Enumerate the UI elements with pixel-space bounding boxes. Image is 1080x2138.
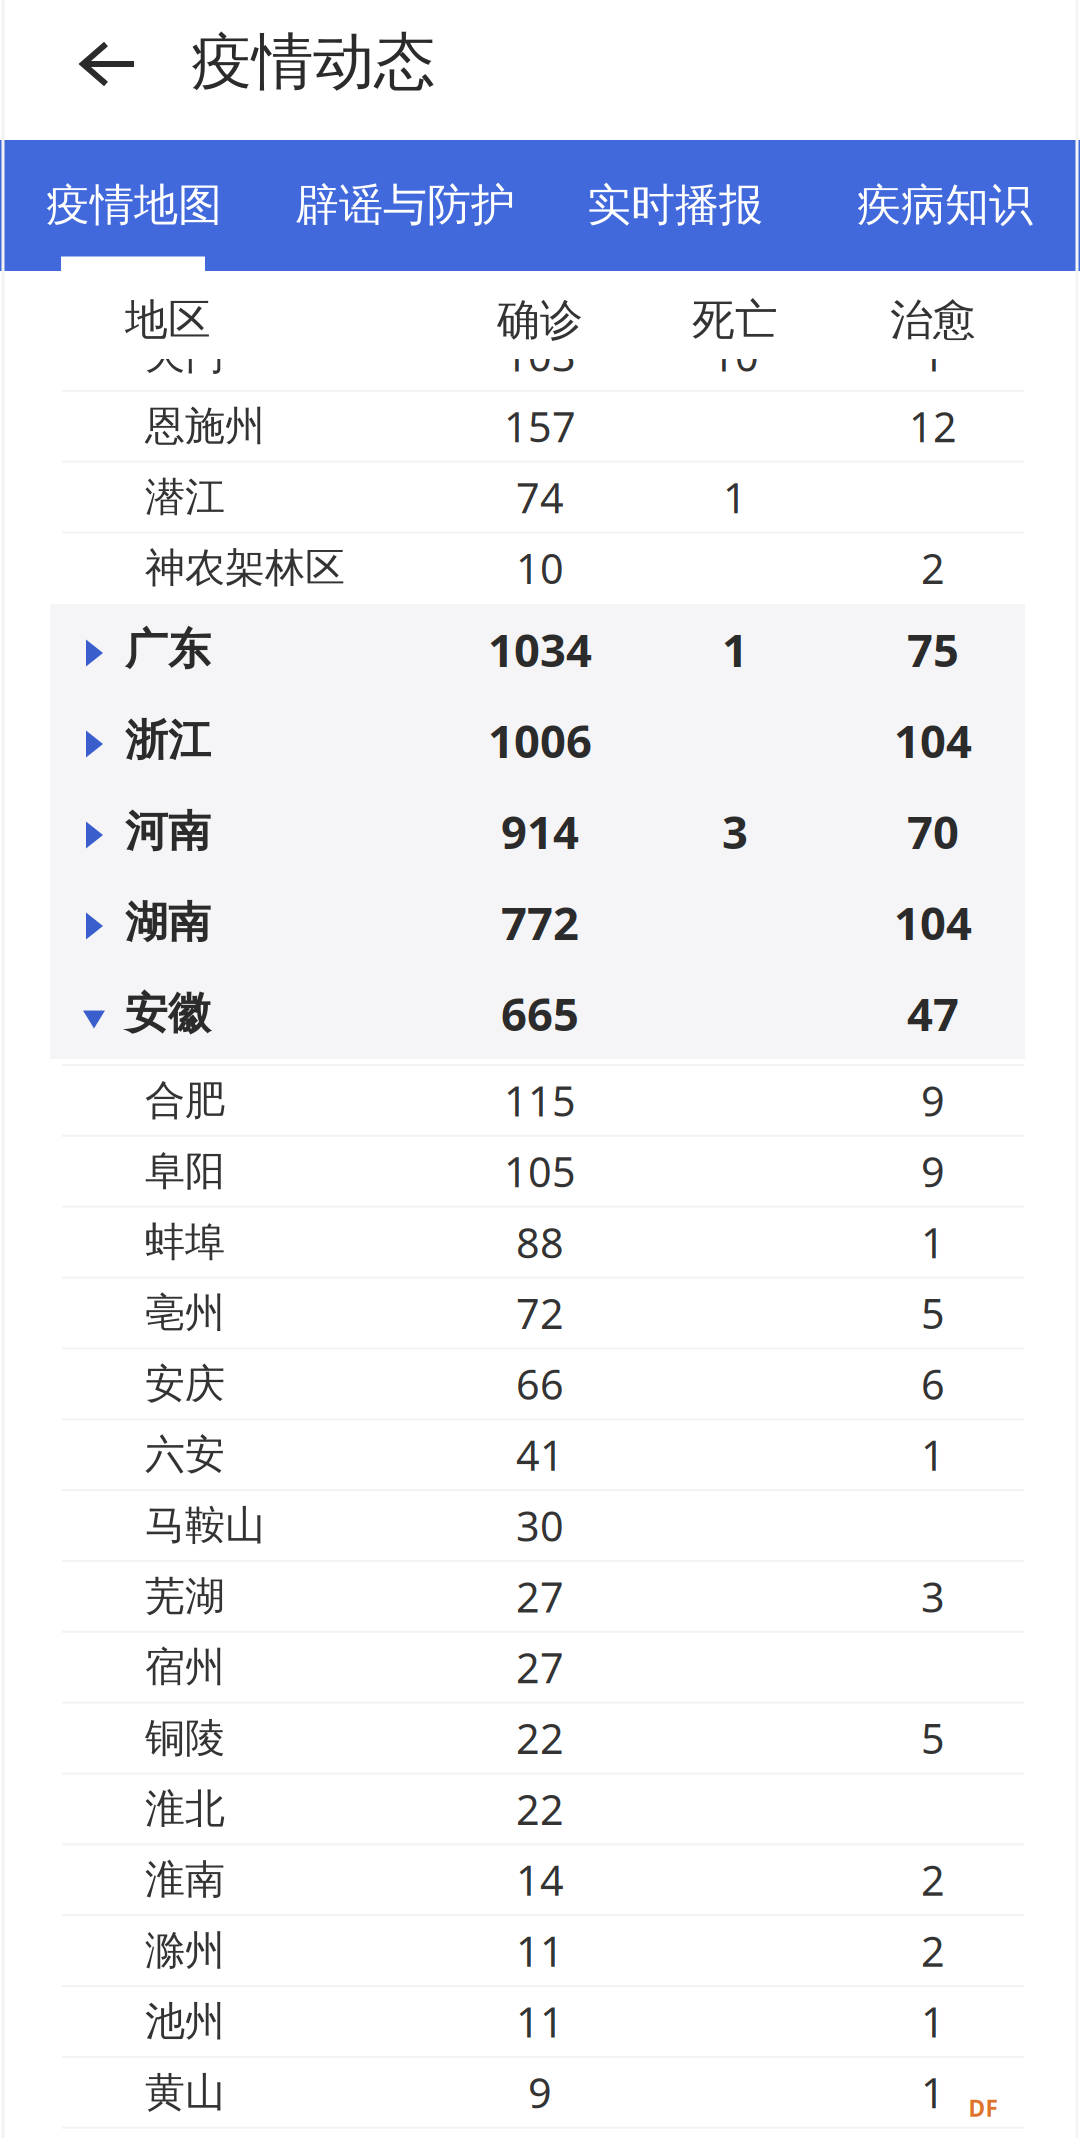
button[interactable]: 广东 <box>0 604 1080 695</box>
staticText: 70 <box>907 801 959 862</box>
staticText: 滁州 <box>145 1926 225 1975</box>
button[interactable]: 安庆 <box>62 1348 1024 1419</box>
staticText: 恩施州 <box>145 402 265 451</box>
staticText: 马鞍山 <box>145 1501 265 1550</box>
button[interactable]: 淮北 <box>62 1773 1024 1844</box>
button[interactable]: Back <box>48 4 168 124</box>
button[interactable]: 芜湖 <box>62 1561 1024 1632</box>
staticText: 5 <box>921 1711 945 1765</box>
button[interactable]: 马鞍山 <box>62 1490 1024 1561</box>
staticText: 22 <box>516 1781 564 1836</box>
staticText: 铜陵 <box>145 1713 225 1763</box>
button[interactable]: 阜阳 <box>62 1136 1024 1207</box>
staticText: 72 <box>516 1285 564 1340</box>
button[interactable]: 湖南 <box>0 877 1080 968</box>
button[interactable]: 蚌埠 <box>62 1207 1024 1277</box>
button[interactable]: 疫情地图 <box>10 139 258 270</box>
button[interactable]: 浙江 <box>0 695 1080 786</box>
button[interactable]: 宿州 <box>62 1632 1024 1703</box>
staticText: 潜江 <box>145 473 225 522</box>
button[interactable]: 辟谣与防护 <box>255 139 555 270</box>
staticText: 淮南 <box>145 1855 225 1904</box>
staticText: 疫情动态 <box>191 24 435 100</box>
staticText: 11 <box>516 1994 564 2049</box>
staticText: 六安 <box>145 1430 225 1479</box>
staticText: 3 <box>722 801 748 862</box>
staticText: 阜阳 <box>145 1147 225 1196</box>
staticText: 914 <box>501 801 579 862</box>
staticText: 黄山 <box>145 2068 225 2117</box>
staticText: 死亡 <box>692 294 778 346</box>
staticText: 115 <box>504 1073 576 1128</box>
staticText: 淮北 <box>145 1784 225 1833</box>
button[interactable]: 铜陵 <box>62 1703 1024 1773</box>
staticText: 2 <box>921 1852 945 1907</box>
staticText: 3 <box>921 1569 945 1624</box>
staticText: 10 <box>711 328 759 383</box>
staticText: 47 <box>907 983 959 1044</box>
button[interactable]: 滁州 <box>62 1915 1024 1986</box>
button[interactable]: 疾病知识 <box>821 139 1069 270</box>
staticText: 1 <box>921 1215 945 1270</box>
staticText: 辟谣与防护 <box>295 178 515 232</box>
staticText: 1 <box>722 619 748 680</box>
staticText: 9 <box>921 1073 945 1128</box>
button[interactable]: 合肥 <box>62 1065 1024 1136</box>
staticText: 1 <box>921 2065 945 2120</box>
staticText: 9 <box>921 1144 945 1199</box>
staticText: 河南 <box>125 805 211 858</box>
staticText: 104 <box>894 892 972 953</box>
button[interactable]: 淮南 <box>62 1844 1024 1915</box>
staticText: 亳州 <box>145 1288 225 1337</box>
staticText: 合肥 <box>145 1076 225 1125</box>
staticText: 5 <box>921 1285 945 1340</box>
staticText: 772 <box>501 892 579 953</box>
staticText: 实时播报 <box>587 178 763 232</box>
staticText: 27 <box>516 1569 564 1624</box>
staticText: 12 <box>909 399 957 454</box>
staticText: 安庆 <box>145 1359 225 1408</box>
staticText: 88 <box>516 1215 564 1270</box>
button[interactable]: 亳州 <box>62 1277 1024 1348</box>
staticText: 蚌埠 <box>145 1218 225 1267</box>
button[interactable]: 潜江 <box>62 462 1024 532</box>
staticText: 1 <box>921 328 945 383</box>
button[interactable]: 恩施州 <box>62 391 1024 462</box>
staticText: 芜湖 <box>145 1572 225 1621</box>
staticText: 157 <box>504 399 576 454</box>
staticText: 14 <box>516 1852 564 1907</box>
staticText: 105 <box>504 1144 576 1199</box>
staticText: 103 <box>504 328 576 383</box>
button[interactable]: 池州 <box>62 1986 1024 2057</box>
staticText: 疫情地图 <box>46 178 222 232</box>
staticText: 30 <box>516 1498 564 1553</box>
button[interactable]: 实时播报 <box>551 139 799 270</box>
staticText: 疾病知识 <box>857 178 1033 232</box>
button[interactable]: 安徽 <box>0 968 1080 1059</box>
staticText: DF <box>968 2093 997 2123</box>
staticText: 74 <box>516 470 564 525</box>
staticText: 湖南 <box>125 896 211 949</box>
staticText: 1006 <box>488 710 592 771</box>
button[interactable]: 天门 <box>62 320 1024 391</box>
staticText: 广东 <box>125 623 211 676</box>
staticText: 1 <box>921 1427 945 1482</box>
staticText: 1 <box>921 1994 945 2049</box>
staticText: 27 <box>516 1640 564 1695</box>
staticText: 2 <box>921 1923 945 1978</box>
staticText: 104 <box>894 710 972 771</box>
button[interactable]: 六安 <box>62 1419 1024 1490</box>
staticText: 1034 <box>488 619 592 680</box>
staticText: 宿州 <box>145 1643 225 1692</box>
button[interactable]: 黄山 <box>62 2057 1024 2128</box>
staticText: 神农架林区 <box>145 543 345 592</box>
staticText: 安徽 <box>125 987 211 1040</box>
staticText: 池州 <box>145 1997 225 2046</box>
button[interactable]: 河南 <box>0 786 1080 877</box>
staticText: 665 <box>501 983 579 1044</box>
staticText: 1 <box>723 470 747 525</box>
button[interactable]: 神农架林区 <box>62 532 1024 603</box>
staticText: 75 <box>907 619 959 680</box>
staticText: 2 <box>921 540 945 595</box>
staticText: 10 <box>516 540 564 595</box>
